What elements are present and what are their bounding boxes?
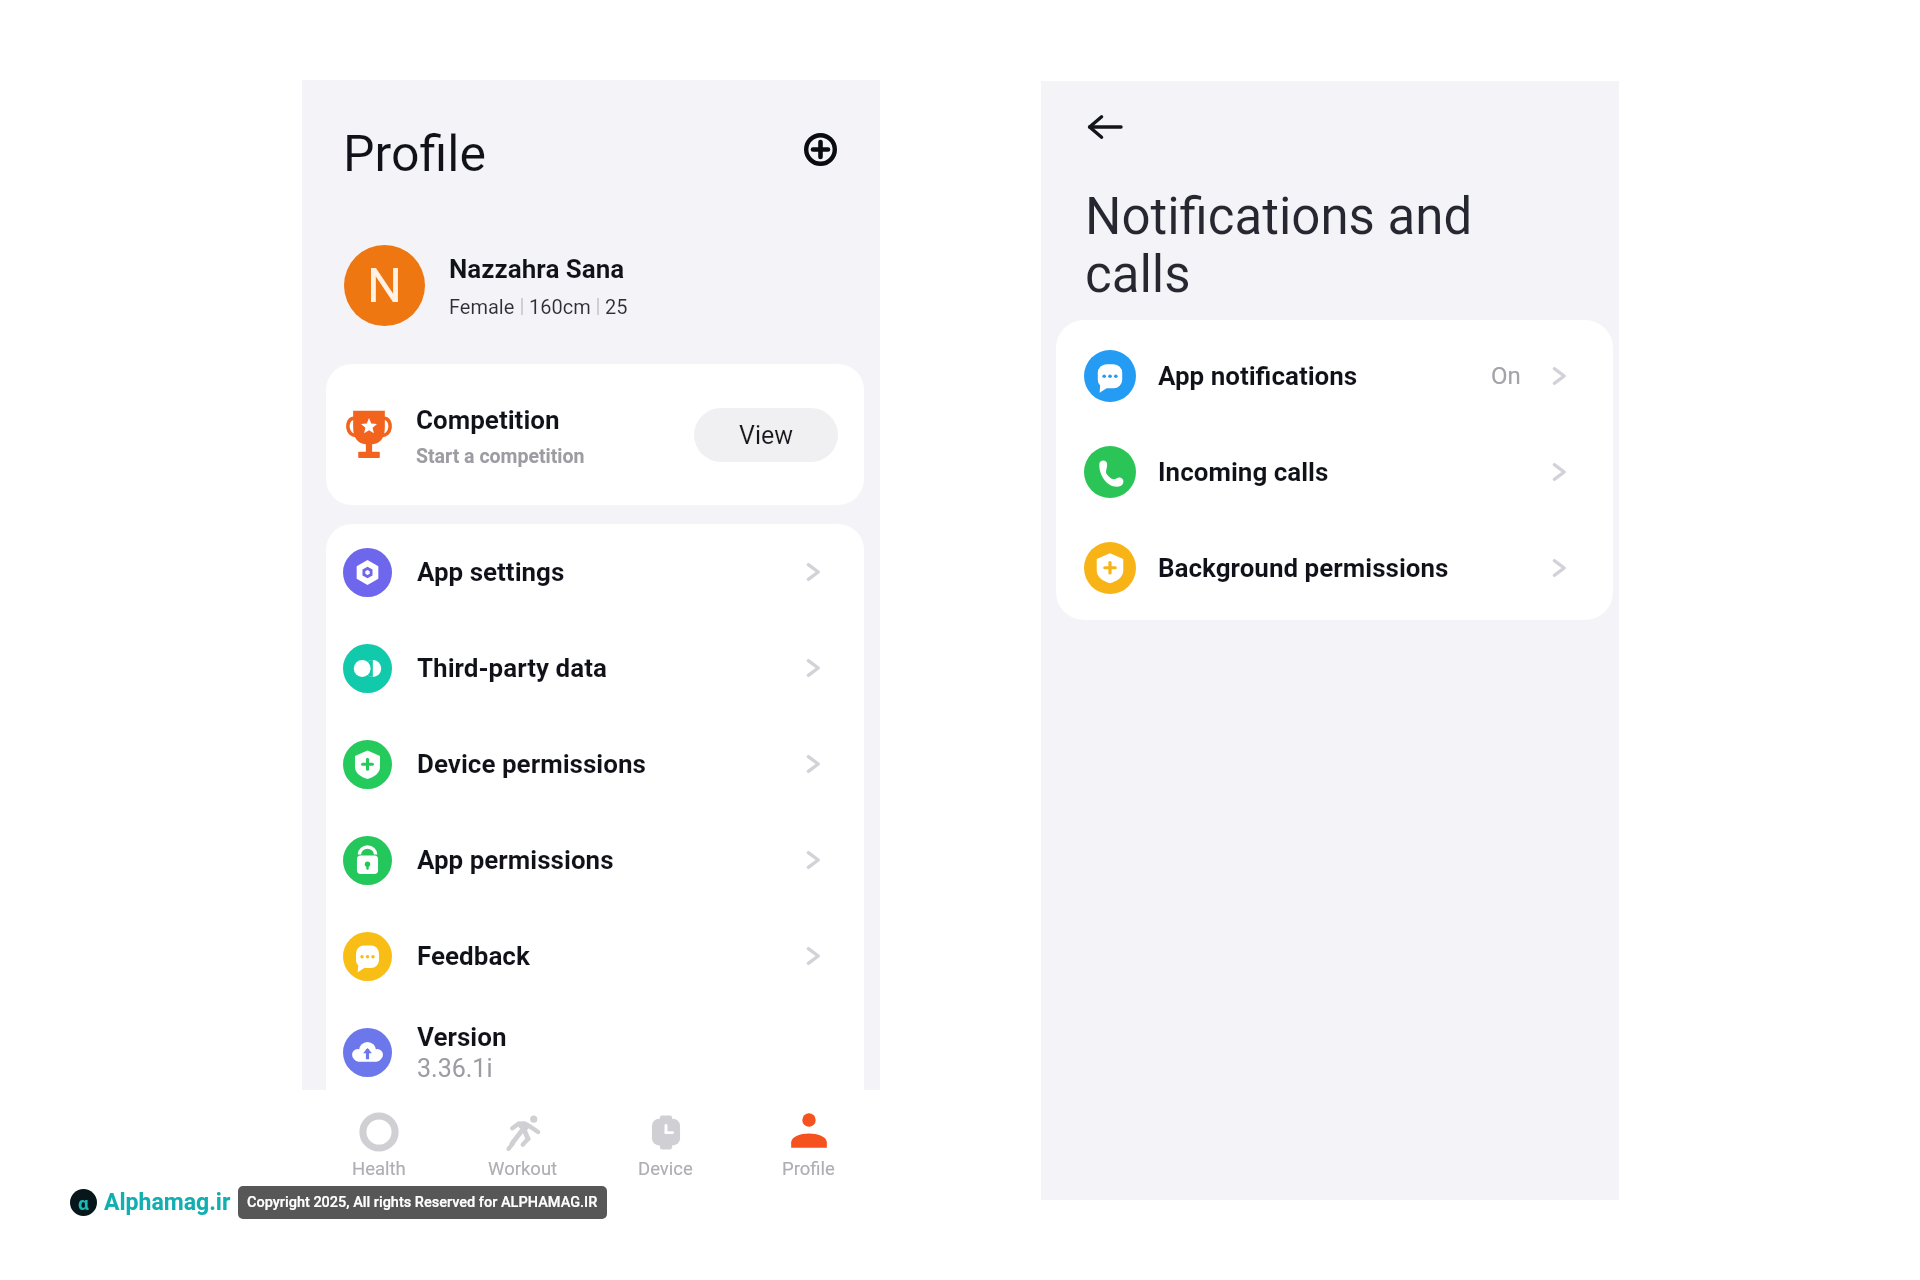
staticText: Device xyxy=(638,1158,693,1180)
staticText: Profile xyxy=(782,1158,835,1180)
staticText: Incoming calls xyxy=(1158,457,1329,487)
staticText: Feedback xyxy=(417,941,530,971)
button[interactable]: View xyxy=(694,408,838,462)
staticText: 25 xyxy=(605,295,628,318)
staticText: App permissions xyxy=(417,845,614,875)
button[interactable]: Add xyxy=(794,123,846,175)
button[interactable]: Device xyxy=(594,1090,737,1190)
button[interactable]: Third-party data xyxy=(343,620,826,716)
button[interactable]: App settings xyxy=(343,524,826,620)
staticText: App settings xyxy=(417,557,565,587)
button[interactable]: Device permissions xyxy=(343,716,826,812)
staticText: Alphamag.ir xyxy=(104,1189,231,1216)
button[interactable]: Workout xyxy=(451,1090,594,1190)
button[interactable]: Back xyxy=(1073,95,1137,159)
button[interactable]: App permissions xyxy=(343,812,826,908)
staticText: Device permissions xyxy=(417,749,646,779)
staticText: Nazzahra Sana xyxy=(449,254,625,284)
button[interactable]: Feedback xyxy=(343,908,826,1004)
button[interactable]: N xyxy=(344,245,814,326)
staticText: Background permissions xyxy=(1158,553,1449,583)
staticText: Notifications and xyxy=(1085,187,1473,247)
staticText: Copyright 2025, All rights Reserved for … xyxy=(247,1194,598,1211)
staticText: Profile xyxy=(343,125,486,184)
staticText: Version xyxy=(417,1022,507,1052)
staticText: Female xyxy=(449,295,515,318)
button[interactable]: Health xyxy=(307,1090,451,1190)
staticText: Competition xyxy=(416,405,560,435)
staticText: N xyxy=(367,257,402,314)
staticText: Third-party data xyxy=(417,653,607,683)
staticText: On xyxy=(1491,362,1521,390)
button[interactable]: Background permissions xyxy=(1084,520,1572,616)
staticText: Workout xyxy=(488,1158,558,1180)
staticText: calls xyxy=(1085,245,1191,305)
staticText: Health xyxy=(352,1158,406,1180)
staticText: View xyxy=(739,421,794,450)
button[interactable]: Competition xyxy=(345,364,838,505)
staticText: Start a competition xyxy=(416,445,585,468)
button[interactable]: Profile xyxy=(737,1090,880,1190)
staticText: App notifications xyxy=(1158,361,1358,391)
button[interactable]: Version xyxy=(343,1004,826,1100)
staticText: 160cm xyxy=(529,295,591,318)
button[interactable]: App notifications xyxy=(1084,328,1572,424)
staticText: 3.36.1i xyxy=(417,1054,493,1083)
button[interactable]: Incoming calls xyxy=(1084,424,1572,520)
staticText: α xyxy=(78,1192,89,1214)
